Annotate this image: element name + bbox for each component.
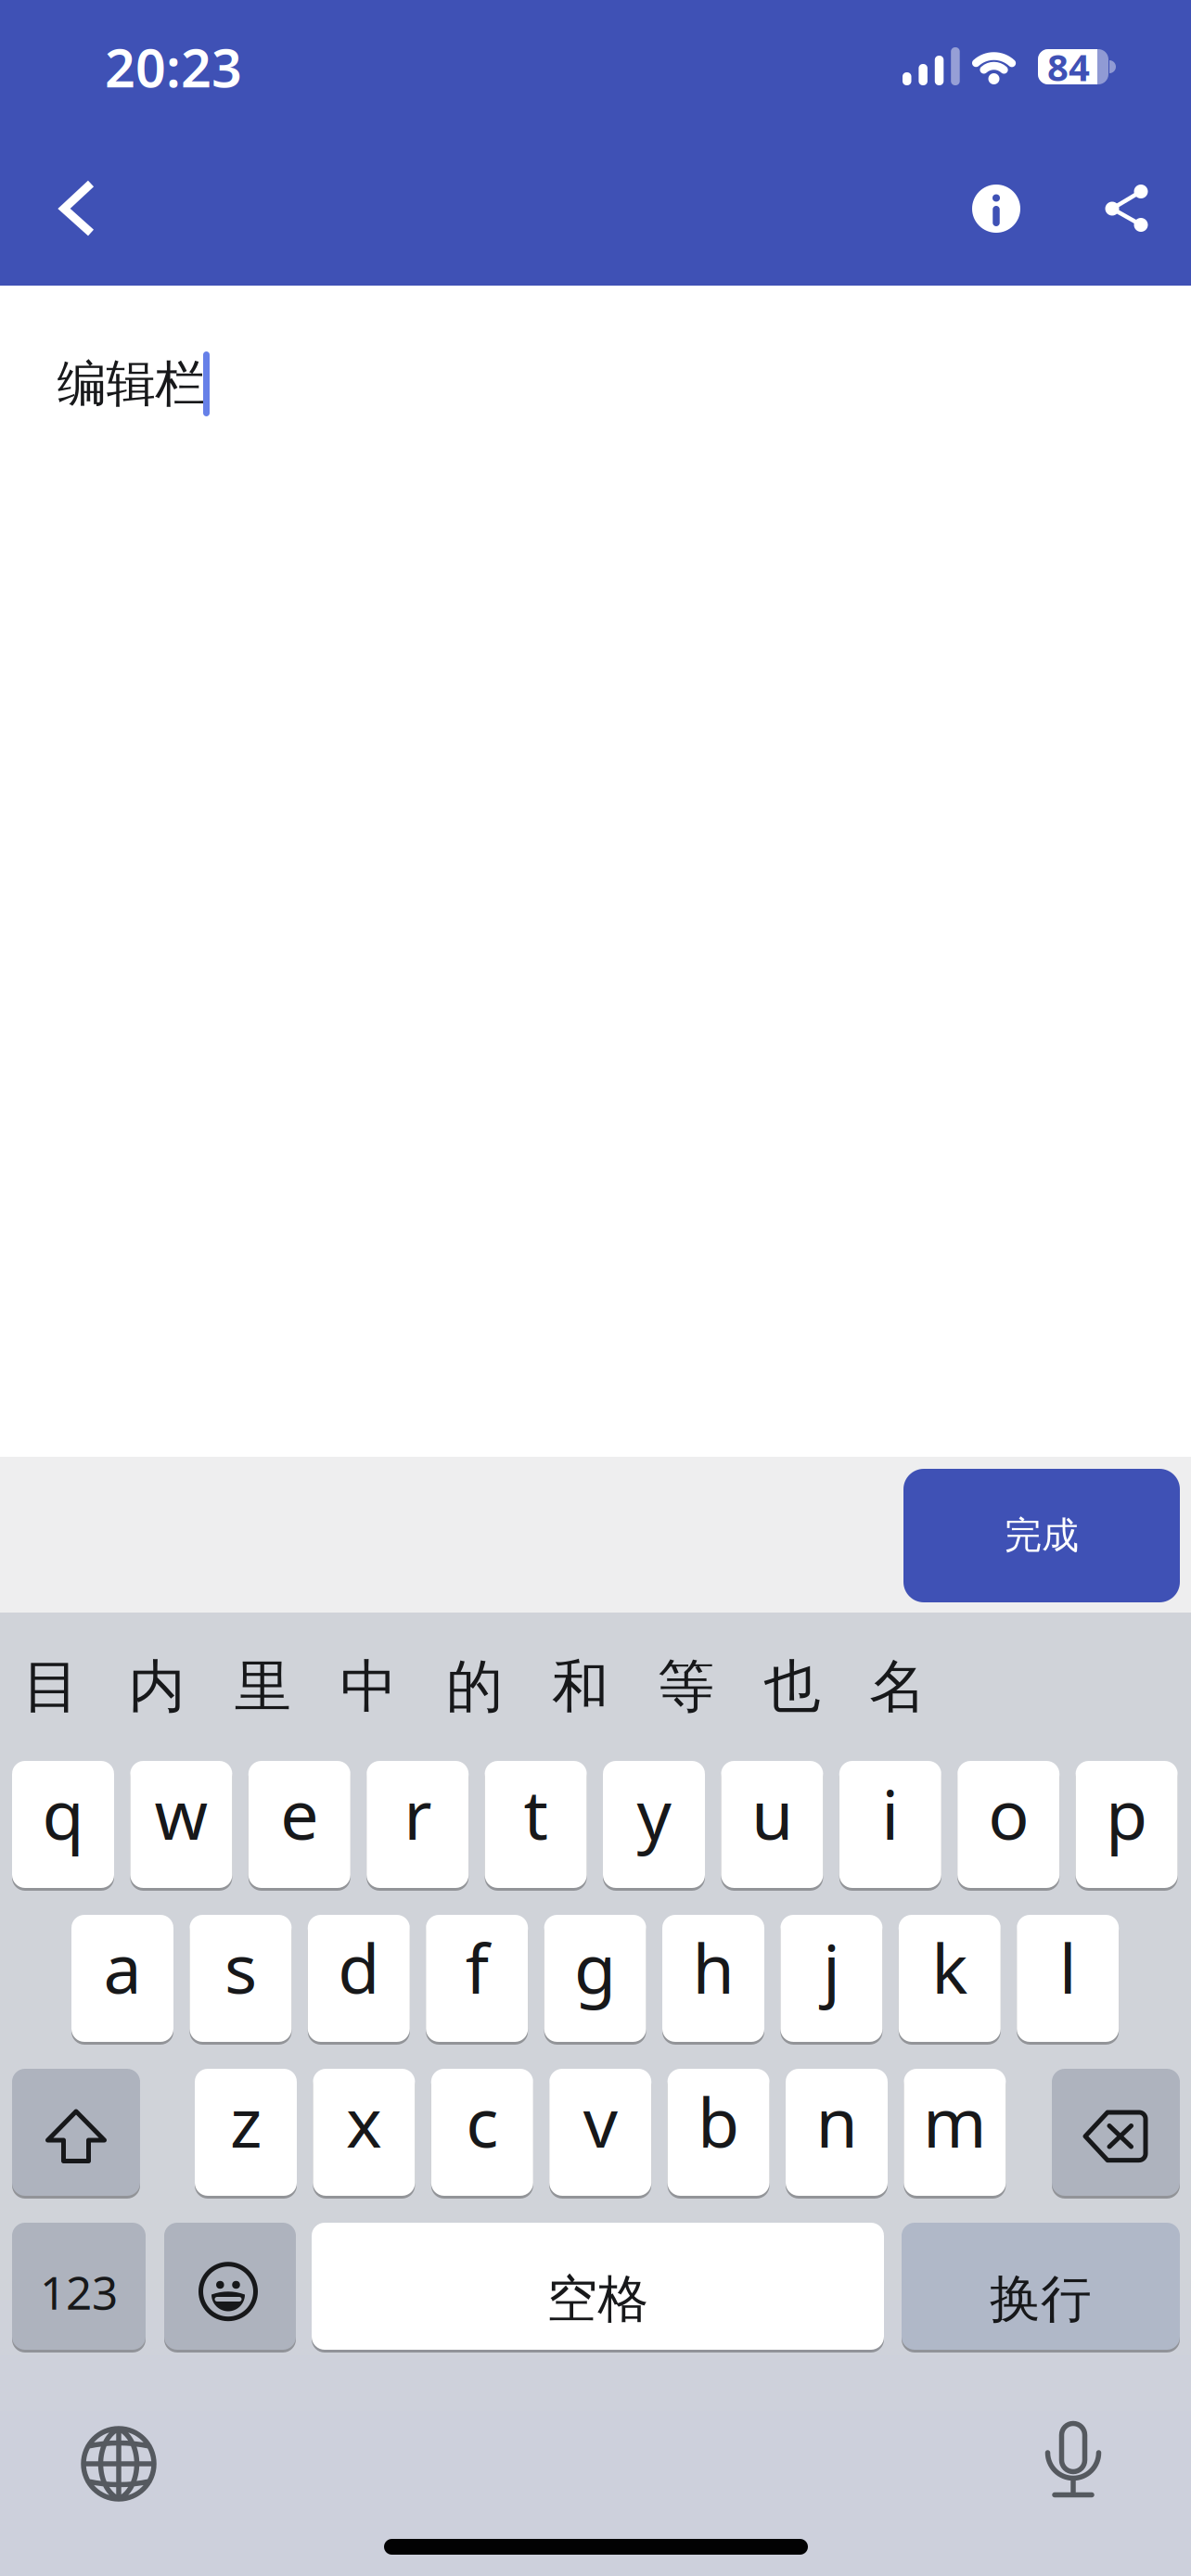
button[interactable]: l — [1017, 1915, 1119, 2042]
staticText: m — [923, 2076, 987, 2166]
button[interactable]: Next keyboard — [72, 2417, 165, 2510]
button[interactable]: 123 — [12, 2223, 146, 2350]
staticText: 84 — [1047, 42, 1090, 91]
button[interactable]: t — [485, 1761, 587, 1888]
button[interactable]: o — [957, 1761, 1059, 1888]
button[interactable]: k — [899, 1915, 1001, 2042]
staticText: j — [823, 1922, 840, 2012]
staticText: f — [465, 1922, 489, 2012]
button[interactable]: Dictate — [1027, 2414, 1120, 2506]
button[interactable]: 目 — [5, 1636, 97, 1738]
staticText: k — [932, 1922, 968, 2012]
staticText: b — [698, 2076, 739, 2166]
button[interactable]: Info — [972, 185, 1020, 233]
staticText: e — [280, 1768, 318, 1858]
staticText: p — [1106, 1768, 1147, 1858]
staticText: 空格 — [547, 2268, 649, 2330]
staticText: 名 — [869, 1652, 926, 1722]
button[interactable]: 换行 — [902, 2223, 1180, 2350]
button[interactable]: p — [1076, 1761, 1178, 1888]
button[interactable]: f — [426, 1915, 528, 2042]
button[interactable]: g — [544, 1915, 646, 2042]
button[interactable]: 内 — [110, 1636, 203, 1738]
button[interactable]: d — [308, 1915, 410, 2042]
button[interactable]: Back — [0, 0, 1191, 2576]
button[interactable]: 里 — [216, 1636, 309, 1738]
button[interactable]: x — [313, 2069, 415, 2196]
button[interactable]: 的 — [428, 1636, 521, 1738]
button[interactable]: 空格 — [312, 2223, 884, 2350]
staticText: n — [816, 2076, 858, 2166]
staticText: 等 — [658, 1652, 714, 1722]
staticText: 目 — [23, 1652, 79, 1722]
button[interactable]: a — [71, 1915, 173, 2042]
staticText: 123 — [40, 2261, 118, 2322]
button[interactable]: 名 — [851, 1636, 944, 1738]
button[interactable]: w — [130, 1761, 232, 1888]
staticText: h — [692, 1922, 734, 2012]
button[interactable]: e — [248, 1761, 350, 1888]
staticText: 的 — [446, 1652, 503, 1722]
button[interactable]: m — [904, 2069, 1006, 2196]
button[interactable]: u — [721, 1761, 823, 1888]
staticText: v — [583, 2076, 617, 2166]
staticText: o — [988, 1768, 1029, 1858]
button[interactable]: c — [431, 2069, 533, 2196]
button[interactable]: y — [603, 1761, 705, 1888]
staticText: g — [574, 1922, 616, 2012]
staticText: z — [230, 2076, 262, 2166]
button[interactable]: z — [195, 2069, 297, 2196]
staticText: c — [466, 2076, 498, 2166]
button[interactable]: Shift — [12, 2069, 140, 2196]
button[interactable]: 和 — [534, 1636, 627, 1738]
button[interactable]: Delete — [1052, 2069, 1180, 2196]
staticText: w — [154, 1768, 208, 1858]
staticText: x — [346, 2076, 382, 2166]
staticText: y — [637, 1768, 671, 1858]
button[interactable]: j — [780, 1915, 882, 2042]
button[interactable]: 也 — [745, 1636, 838, 1738]
button[interactable]: s — [190, 1915, 292, 2042]
button[interactable]: 中 — [322, 1636, 415, 1738]
staticText: 完成 — [1005, 1513, 1079, 1558]
staticText: u — [751, 1768, 793, 1858]
staticText: 内 — [129, 1652, 185, 1722]
button[interactable]: v — [549, 2069, 651, 2196]
staticText: 和 — [552, 1652, 608, 1722]
staticText: s — [224, 1922, 257, 2012]
staticText: d — [338, 1922, 380, 2012]
staticText: q — [42, 1768, 84, 1858]
staticText: 编辑栏 — [57, 353, 205, 414]
staticText: 中 — [340, 1652, 397, 1722]
button[interactable]: Emoji — [164, 2223, 296, 2350]
staticText: r — [404, 1768, 432, 1858]
staticText: l — [1059, 1922, 1077, 2012]
staticText: 换行 — [990, 2268, 1092, 2330]
staticText: 里 — [234, 1652, 291, 1722]
staticText: a — [103, 1922, 141, 2012]
staticText: 20:23 — [105, 31, 242, 102]
button[interactable]: q — [12, 1761, 114, 1888]
button[interactable]: 等 — [640, 1636, 732, 1738]
button[interactable]: i — [839, 1761, 941, 1888]
button[interactable]: r — [367, 1761, 469, 1888]
staticText: i — [881, 1768, 899, 1858]
button[interactable]: h — [662, 1915, 764, 2042]
staticText: 也 — [764, 1652, 820, 1722]
button[interactable]: b — [667, 2069, 770, 2196]
button[interactable]: n — [786, 2069, 888, 2196]
button[interactable]: 完成 — [903, 1469, 1180, 1602]
button[interactable]: Share — [1090, 185, 1149, 231]
staticText: t — [524, 1768, 548, 1858]
